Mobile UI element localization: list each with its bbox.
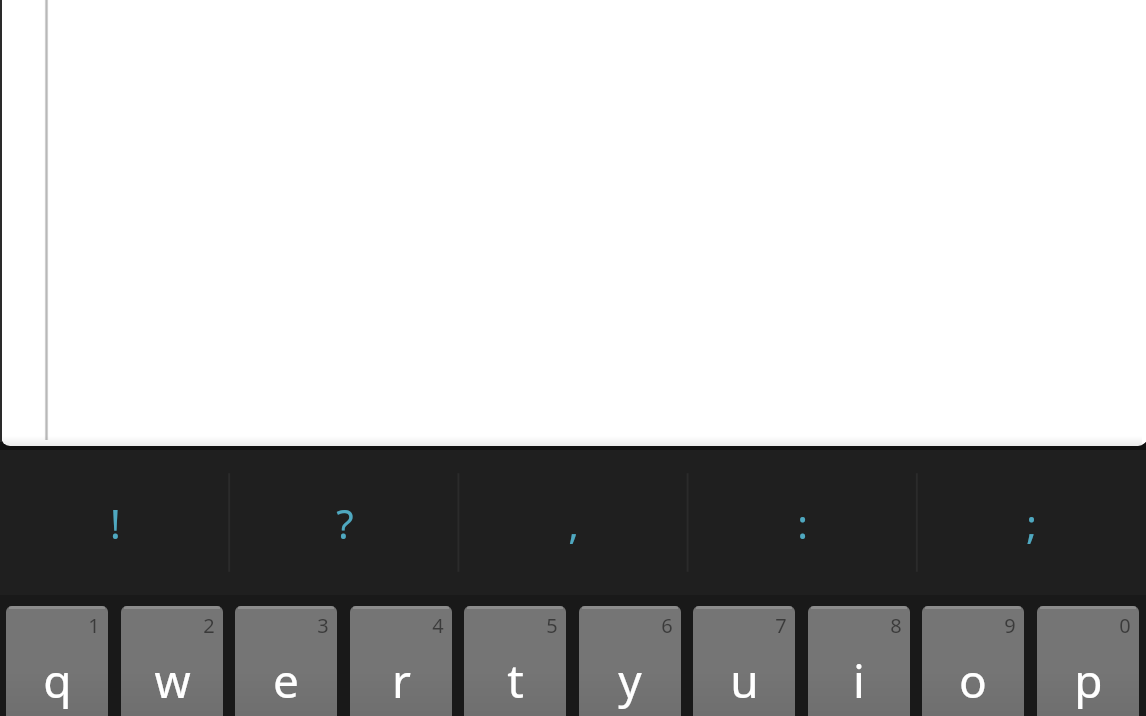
staticText: 0 bbox=[1119, 612, 1131, 639]
staticText: ! bbox=[110, 496, 121, 550]
button[interactable]: 2 bbox=[121, 606, 223, 716]
button[interactable]: 7 bbox=[693, 606, 795, 716]
staticText: 4 bbox=[432, 612, 444, 639]
button[interactable]: 4 bbox=[350, 606, 452, 716]
staticText: 6 bbox=[661, 612, 673, 639]
staticText: 3 bbox=[317, 612, 329, 639]
staticText: 7 bbox=[775, 612, 787, 639]
staticText: , bbox=[568, 496, 579, 550]
button[interactable]: Text input area bbox=[1, 0, 1146, 446]
button[interactable]: ! bbox=[0, 450, 230, 595]
button[interactable]: 8 bbox=[808, 606, 910, 716]
button[interactable]: : bbox=[688, 450, 917, 595]
staticText: w bbox=[154, 649, 191, 712]
staticText: 2 bbox=[203, 612, 215, 639]
button[interactable]: ; bbox=[917, 450, 1146, 595]
staticText: u bbox=[730, 649, 759, 712]
button[interactable]: , bbox=[459, 450, 688, 595]
button[interactable]: 5 bbox=[464, 606, 566, 716]
staticText: r bbox=[392, 649, 411, 712]
button[interactable]: 0 bbox=[1037, 606, 1139, 716]
staticText: q bbox=[43, 649, 72, 712]
staticText: t bbox=[507, 649, 524, 712]
staticText: 8 bbox=[890, 612, 902, 639]
staticText: 1 bbox=[88, 612, 100, 639]
staticText: p bbox=[1074, 649, 1103, 712]
staticText: e bbox=[273, 649, 299, 712]
staticText: 5 bbox=[546, 612, 558, 639]
staticText: o bbox=[959, 649, 987, 712]
button[interactable]: 6 bbox=[579, 606, 681, 716]
button[interactable]: 3 bbox=[235, 606, 337, 716]
staticText: : bbox=[797, 496, 808, 550]
staticText: ; bbox=[1026, 496, 1037, 550]
button[interactable]: 9 bbox=[922, 606, 1024, 716]
staticText: 9 bbox=[1004, 612, 1016, 639]
staticText: ? bbox=[336, 496, 354, 550]
button[interactable]: ? bbox=[230, 450, 459, 595]
button[interactable]: 1 bbox=[6, 606, 108, 716]
staticText: y bbox=[618, 649, 642, 712]
staticText: i bbox=[853, 649, 865, 712]
